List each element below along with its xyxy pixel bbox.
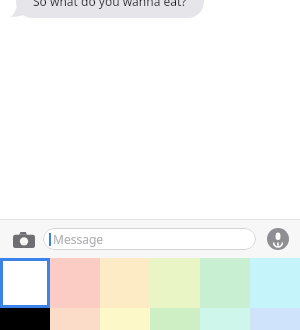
button[interactable]: Camera	[9, 224, 39, 254]
staticText: Message	[53, 231, 104, 247]
staticText: So what do you wanna eat?	[33, 0, 187, 9]
button[interactable]: Message	[43, 228, 256, 250]
button[interactable]: So what do you wanna eat?	[10, 0, 204, 18]
button[interactable]: Colour swatch	[0, 258, 50, 308]
button[interactable]: Voice message	[263, 224, 293, 254]
